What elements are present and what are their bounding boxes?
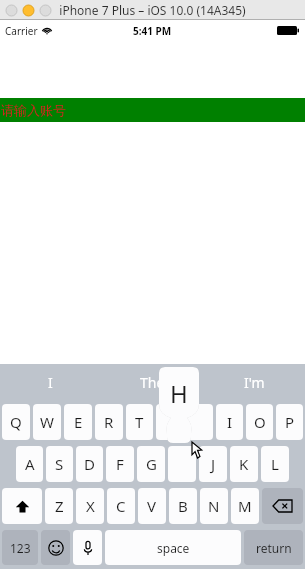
staticText: I xyxy=(48,373,53,392)
button[interactable]: B xyxy=(169,488,197,524)
button[interactable]: I xyxy=(0,364,101,401)
staticText: H xyxy=(170,377,188,410)
staticText: L xyxy=(271,454,279,474)
staticText: W xyxy=(40,412,54,432)
staticText: 123 xyxy=(10,540,31,556)
staticText: Q xyxy=(10,412,22,432)
button[interactable]: W xyxy=(33,404,61,440)
button[interactable] xyxy=(156,404,183,440)
staticText: V xyxy=(147,496,157,516)
button[interactable]: Minimize xyxy=(23,5,34,16)
button[interactable]: D xyxy=(76,446,103,482)
staticText: S xyxy=(55,454,64,474)
staticText: O xyxy=(254,412,266,432)
staticText: M xyxy=(238,496,252,516)
staticText: iPhone 7 Plus – iOS 10.0 (14A345) xyxy=(59,2,246,18)
button[interactable]: T xyxy=(126,404,153,440)
button[interactable]: Close xyxy=(6,5,17,16)
button[interactable]: J xyxy=(199,446,227,482)
button[interactable]: K xyxy=(230,446,258,482)
staticText: return xyxy=(256,540,292,556)
button[interactable]: E xyxy=(64,404,92,440)
staticText: Z xyxy=(55,496,64,516)
button[interactable]: Backspace xyxy=(262,488,303,524)
button[interactable]: Shift xyxy=(2,488,42,524)
button[interactable]: S xyxy=(46,446,73,482)
staticText: D xyxy=(84,454,95,474)
button[interactable]: C xyxy=(107,488,135,524)
button[interactable]: Emoji xyxy=(41,530,70,565)
staticText: P xyxy=(285,412,295,432)
staticText: T xyxy=(135,412,144,432)
button[interactable]: space xyxy=(105,530,241,565)
button[interactable]: M xyxy=(231,488,259,524)
button[interactable]: P xyxy=(276,404,303,440)
button[interactable]: Dictation xyxy=(73,530,102,565)
staticText: A xyxy=(25,454,35,474)
button[interactable]: I xyxy=(216,404,243,440)
button[interactable]: F xyxy=(106,446,134,482)
button[interactable]: G xyxy=(137,446,165,482)
staticText: E xyxy=(74,412,83,432)
staticText: space xyxy=(157,540,190,556)
button[interactable]: 请输入账号 xyxy=(0,98,305,122)
button[interactable]: Z xyxy=(45,488,73,524)
button[interactable]: I'm xyxy=(203,364,305,401)
staticText: X xyxy=(86,496,95,516)
staticText: I xyxy=(227,412,233,432)
button[interactable]: X xyxy=(76,488,104,524)
staticText: 5:41 PM xyxy=(133,24,172,38)
staticText: R xyxy=(104,412,114,432)
staticText: Carrier xyxy=(5,24,38,38)
staticText: The xyxy=(140,373,165,392)
button[interactable]: Zoom xyxy=(40,5,51,16)
button[interactable]: N xyxy=(200,488,228,524)
button[interactable]: Q xyxy=(2,404,30,440)
button[interactable]: O xyxy=(246,404,273,440)
button[interactable]: The xyxy=(101,364,203,401)
button[interactable]: return xyxy=(244,530,303,565)
button[interactable] xyxy=(168,446,196,482)
staticText: F xyxy=(116,454,124,474)
button[interactable]: V xyxy=(138,488,166,524)
button[interactable] xyxy=(186,404,213,440)
staticText: B xyxy=(178,496,188,516)
button[interactable]: 123 xyxy=(2,530,38,565)
staticText: 请输入账号 xyxy=(1,102,66,118)
button[interactable]: R xyxy=(95,404,123,440)
button[interactable]: L xyxy=(261,446,289,482)
staticText: I'm xyxy=(244,373,265,392)
staticText: G xyxy=(146,454,157,474)
staticText: J xyxy=(211,454,216,474)
staticText: N xyxy=(208,496,220,516)
staticText: K xyxy=(239,454,249,474)
button[interactable]: A xyxy=(16,446,43,482)
staticText: C xyxy=(116,496,126,516)
